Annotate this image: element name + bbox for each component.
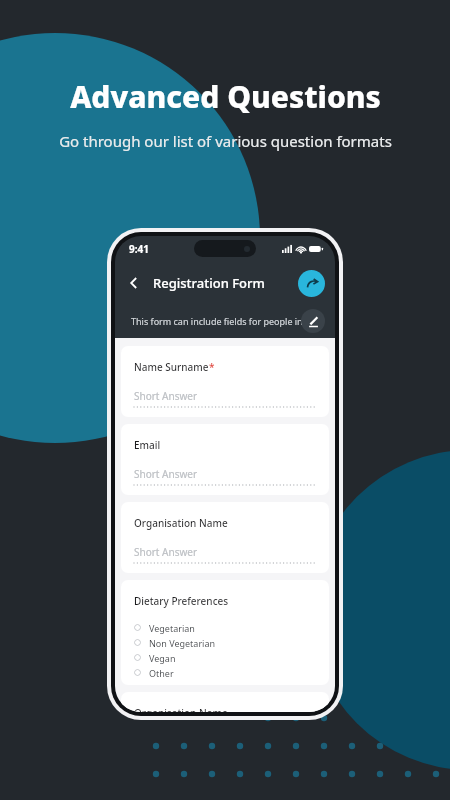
button[interactable]: Vegan [134, 650, 316, 665]
staticText: Short Answer [134, 467, 198, 481]
button[interactable]: Organisation Name [121, 502, 329, 573]
staticText: Dietary Preferences [134, 594, 229, 608]
staticText: Email [134, 438, 161, 452]
button[interactable]: Organisation Name [121, 692, 329, 712]
staticText: Vegan [149, 652, 176, 664]
button[interactable]: Share [298, 270, 325, 297]
staticText: Non Vegetarian [149, 637, 216, 649]
staticText: 9:41 [129, 242, 149, 256]
staticText: Short Answer [134, 389, 198, 403]
staticText: Short Answer [134, 545, 198, 559]
button[interactable]: Other [134, 665, 316, 680]
button[interactable]: Name Surname [121, 346, 329, 417]
staticText: Name Surname [134, 360, 209, 374]
staticText: Other [149, 667, 174, 679]
staticText: Advanced Questions [70, 76, 381, 117]
button[interactable]: Vegetarian [134, 620, 316, 635]
button[interactable]: Back [121, 270, 147, 296]
staticText: * [209, 360, 215, 374]
staticText: Organisation Name [134, 706, 228, 712]
staticText: Go through our list of various question … [59, 131, 392, 151]
staticText: Registration Form [153, 274, 265, 292]
button[interactable]: Email [121, 424, 329, 495]
button[interactable]: Edit [301, 309, 325, 333]
button[interactable]: Dietary Preferences [121, 580, 329, 685]
staticText: Organisation Name [134, 516, 228, 530]
staticText: This form can include fields for people … [131, 315, 312, 327]
button[interactable]: Non Vegetarian [134, 635, 316, 650]
staticText: Vegetarian [149, 622, 195, 634]
